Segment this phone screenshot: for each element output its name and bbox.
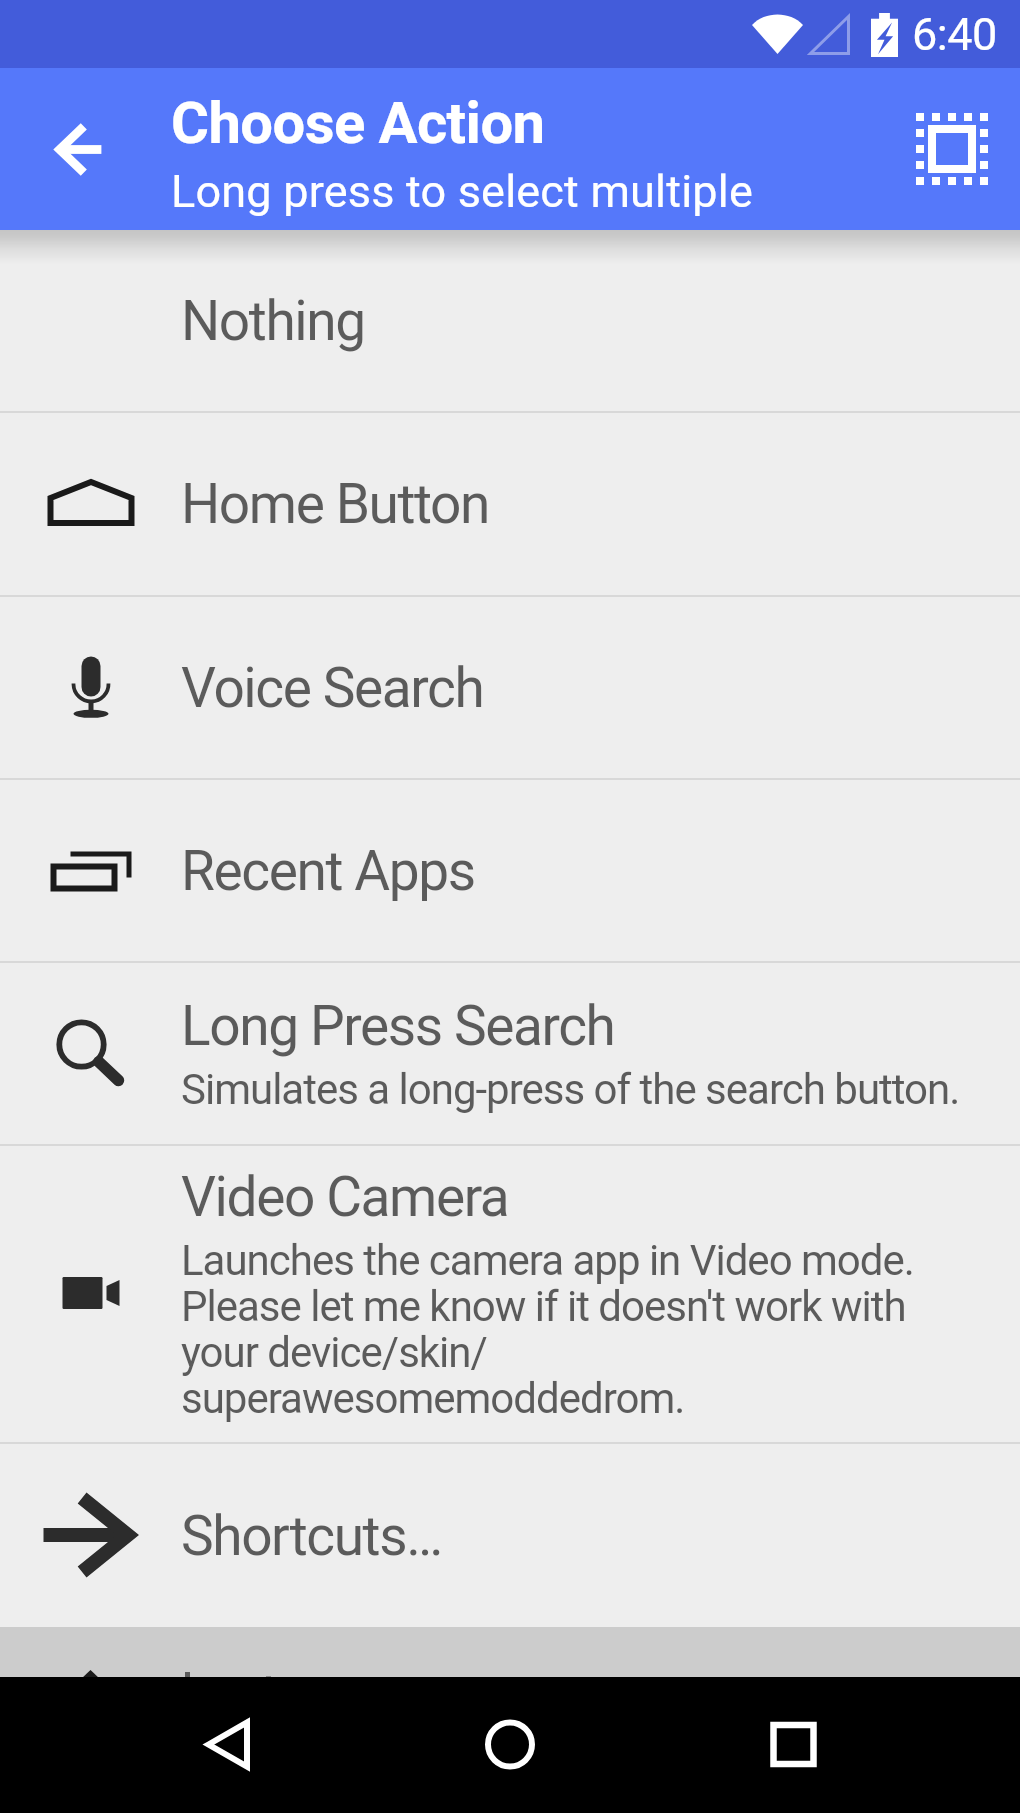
staticText: Home Button <box>181 472 490 536</box>
staticText: Video Camera <box>181 1165 509 1229</box>
staticText: Launches the camera app in Video mode. P… <box>181 1239 990 1423</box>
button[interactable]: Recent Apps <box>0 780 1020 961</box>
button[interactable]: Home Button <box>0 413 1020 595</box>
button[interactable] <box>0 1627 1020 1679</box>
button[interactable]: Select all <box>900 97 1004 201</box>
button[interactable]: Long Press Search <box>0 963 1020 1144</box>
staticText: Recent Apps <box>181 839 475 903</box>
staticText: Long press to select multiple <box>171 165 753 218</box>
staticText: Simulates a long-press of the search but… <box>181 1068 960 1114</box>
staticText: Shortcuts… <box>181 1504 442 1568</box>
button[interactable]: Voice Search <box>0 597 1020 778</box>
staticText: Nothing <box>181 289 365 353</box>
button[interactable]: Shortcuts… <box>0 1444 1020 1627</box>
button[interactable]: Video Camera <box>0 1146 1020 1442</box>
button[interactable]: Navigate up <box>28 97 132 201</box>
staticText: 6:40 <box>912 8 997 61</box>
button[interactable]: Recent apps <box>735 1685 855 1805</box>
staticText: Long Press Search <box>181 994 615 1058</box>
staticText: Choose Action <box>171 89 545 157</box>
button[interactable]: Home <box>450 1685 570 1805</box>
button[interactable]: Nothing <box>0 230 1020 411</box>
staticText: Voice Search <box>181 656 484 720</box>
button[interactable]: Back <box>165 1685 285 1805</box>
